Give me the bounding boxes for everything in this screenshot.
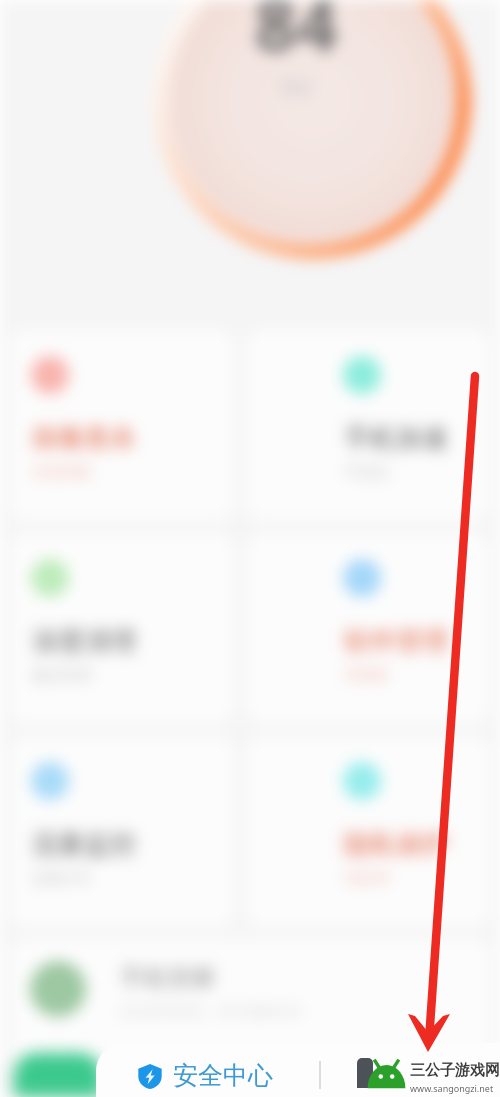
staticText: 流量监控	[32, 828, 136, 861]
staticText: 病毒查杀	[32, 422, 136, 455]
staticText: www.sangongzi.net	[410, 1082, 494, 1094]
staticText: 有更新	[344, 666, 389, 685]
staticText: 隐私保护	[344, 828, 448, 861]
button[interactable]: 手机加速	[246, 330, 490, 521]
staticText: 软件管理	[344, 625, 448, 658]
button[interactable]: 深度清理	[10, 533, 234, 724]
button[interactable]: 病毒查杀	[10, 330, 234, 521]
staticText: 深度清理	[32, 625, 136, 658]
button[interactable]: 流量监控	[10, 736, 234, 927]
staticText: 84	[255, 0, 338, 72]
button[interactable]: 手机管家	[10, 939, 490, 1069]
button[interactable]: 软件管理	[246, 533, 490, 724]
staticText: 三公子游戏网	[410, 1061, 500, 1080]
staticText: 手机管家	[120, 963, 216, 993]
staticText: 手机加速	[344, 422, 448, 455]
button[interactable]: Open	[14, 1053, 102, 1097]
button[interactable]: 安全中心	[137, 1060, 273, 1091]
staticText: 发现风险	[32, 463, 92, 482]
staticText: 安全中心	[173, 1060, 273, 1091]
button[interactable]: 隐私保护	[246, 736, 490, 927]
